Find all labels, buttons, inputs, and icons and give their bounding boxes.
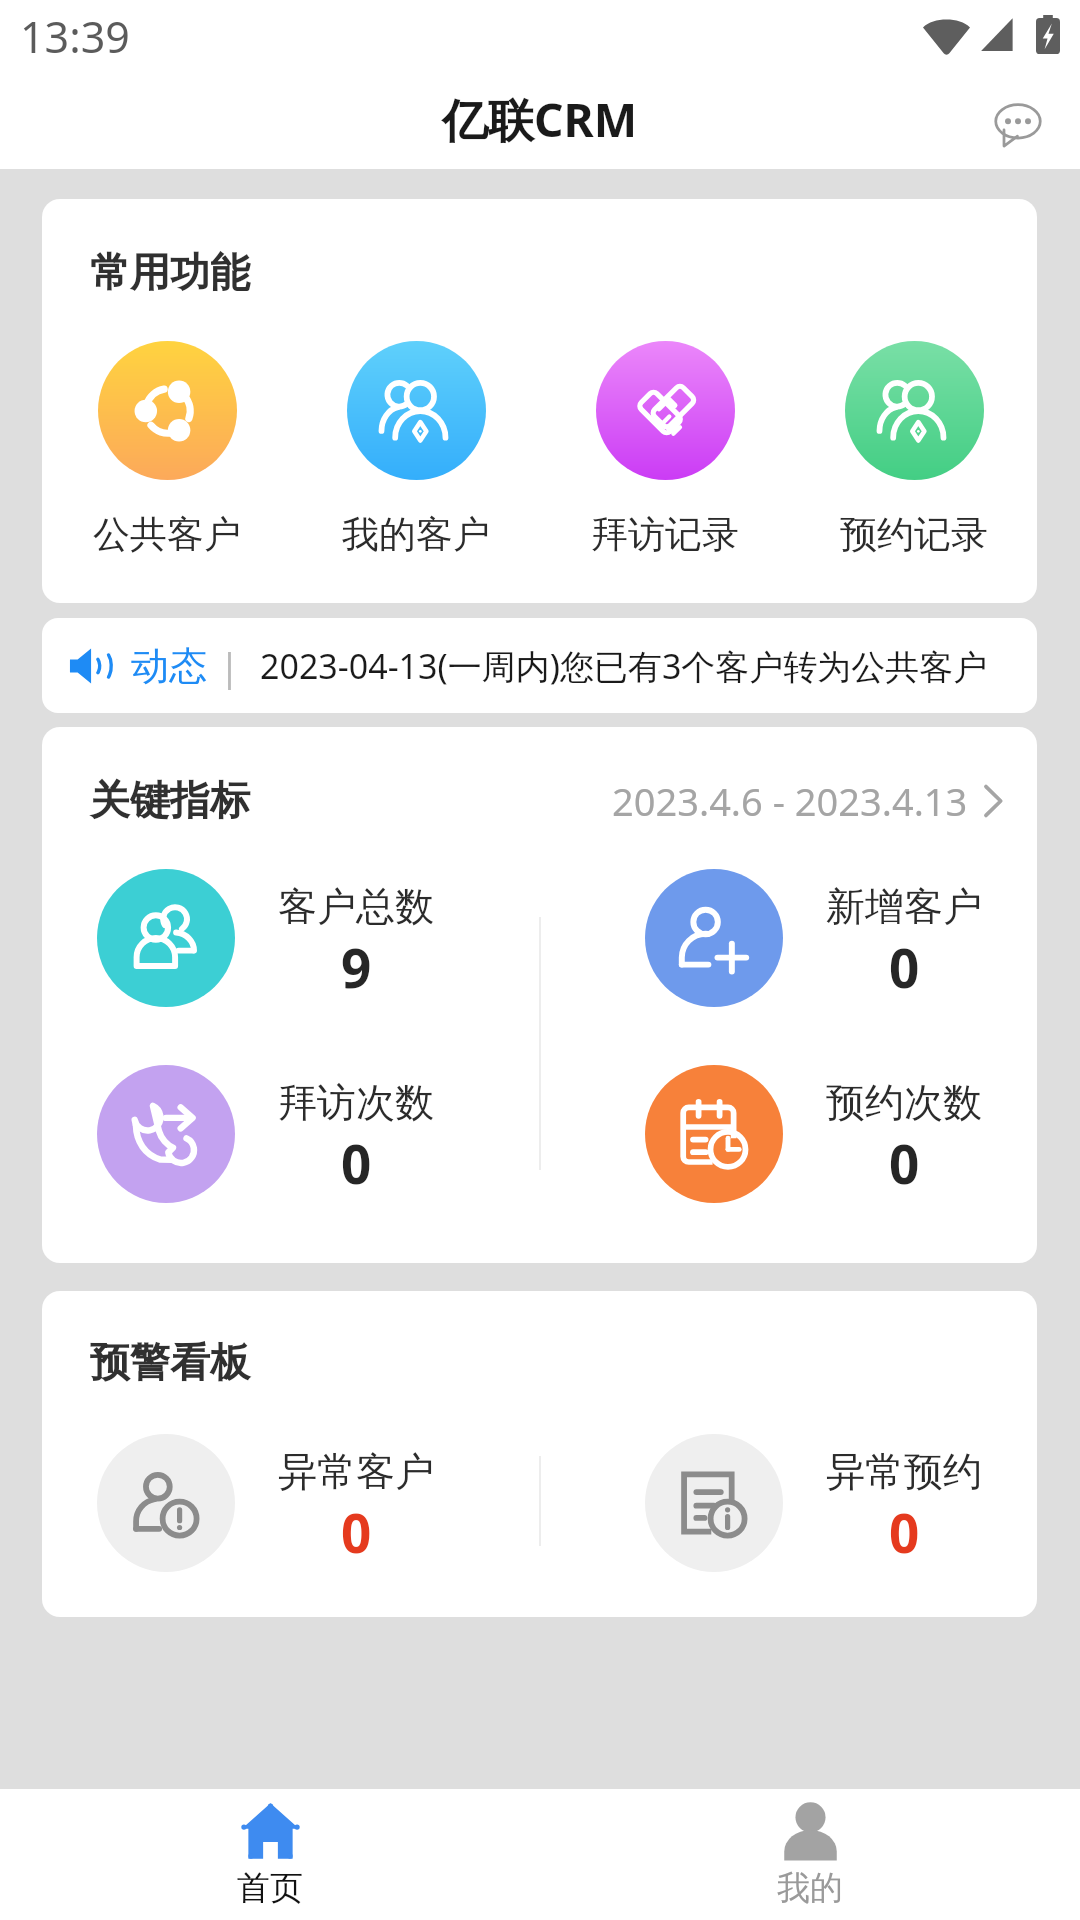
staticText: 客户总数 xyxy=(278,882,434,931)
staticText: 0 xyxy=(889,1496,920,1568)
staticText: 异常客户 xyxy=(278,1447,434,1496)
staticText: 关键指标 xyxy=(90,775,250,825)
button[interactable]: 我的 xyxy=(540,1789,1080,1920)
button[interactable]: 客户总数 xyxy=(97,869,497,1007)
button[interactable]: 拜访记录 xyxy=(575,341,755,558)
staticText: 首页 xyxy=(237,1867,303,1906)
button[interactable]: Messages xyxy=(992,77,1066,151)
staticText: 动态 xyxy=(131,642,207,690)
staticText: 13:39 xyxy=(20,7,130,65)
staticText: 0 xyxy=(889,1127,920,1199)
staticText: 0 xyxy=(889,931,920,1003)
staticText: 常用功能 xyxy=(90,247,250,297)
staticText: 2023.4.6 - 2023.4.13 xyxy=(612,775,968,827)
button[interactable]: 异常客户 xyxy=(97,1434,497,1572)
staticText: 2023-04-13(一周内)您已有3个客户转为公共客户 xyxy=(260,643,988,689)
staticText: 预约次数 xyxy=(826,1078,982,1127)
staticText: 拜访次数 xyxy=(278,1078,434,1127)
staticText: | xyxy=(219,640,240,692)
staticText: 9 xyxy=(341,931,372,1003)
button[interactable]: 异常预约 xyxy=(645,1434,1037,1572)
button[interactable]: 我的客户 xyxy=(326,341,506,558)
staticText: 预警看板 xyxy=(90,1337,250,1387)
staticText: 公共客户 xyxy=(93,511,241,558)
button[interactable]: 预约记录 xyxy=(824,341,1004,558)
button[interactable]: 动态 xyxy=(42,618,1037,713)
staticText: 我的 xyxy=(777,1867,843,1906)
staticText: 预约记录 xyxy=(840,511,988,558)
staticText: 亿联CRM xyxy=(442,88,638,151)
button[interactable]: 预约次数 xyxy=(645,1065,1037,1203)
button[interactable]: 首页 xyxy=(0,1789,540,1920)
staticText: 新增客户 xyxy=(826,882,982,931)
button[interactable]: 拜访次数 xyxy=(97,1065,497,1203)
button[interactable]: 公共客户 xyxy=(77,341,257,558)
staticText: 拜访记录 xyxy=(591,511,739,558)
staticText: 0 xyxy=(341,1496,372,1568)
button[interactable]: 新增客户 xyxy=(645,869,1037,1007)
staticText: 0 xyxy=(341,1127,372,1199)
staticText: 我的客户 xyxy=(342,511,490,558)
staticText: 异常预约 xyxy=(826,1447,982,1496)
button[interactable]: 2023.4.6 - 2023.4.13 xyxy=(612,775,1004,827)
